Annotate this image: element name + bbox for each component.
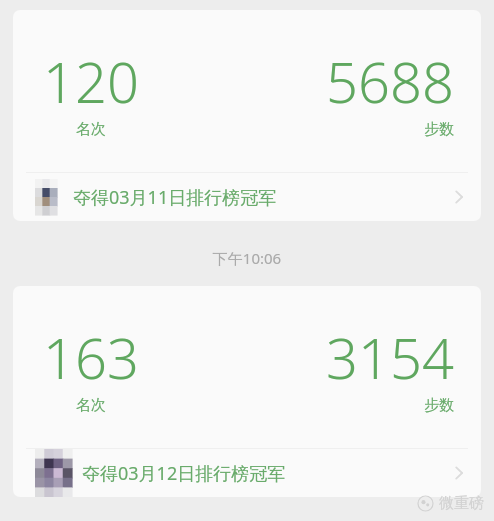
button[interactable]: 夺得03月12日排行榜冠军	[13, 449, 481, 497]
staticText: 夺得03月12日排行榜冠军	[82, 461, 286, 486]
staticText: 夺得03月11日排行榜冠军	[73, 185, 277, 210]
staticText: 163	[43, 319, 139, 395]
button[interactable]: 120	[13, 10, 481, 221]
button[interactable]: 163	[13, 286, 481, 497]
staticText: 120	[43, 43, 139, 119]
staticText: 5688	[326, 43, 454, 119]
staticText: 3154	[326, 319, 454, 395]
button[interactable]: 查看详情	[446, 460, 472, 486]
staticText: 名次	[76, 120, 106, 139]
staticText: 步数	[424, 120, 454, 139]
staticText: 名次	[76, 396, 106, 415]
staticText: 下午10:06	[0, 248, 494, 268]
button[interactable]: 查看详情	[446, 184, 472, 210]
staticText: 步数	[424, 396, 454, 415]
button[interactable]: 夺得03月11日排行榜冠军	[13, 173, 481, 221]
staticText: 微重磅	[439, 494, 484, 513]
